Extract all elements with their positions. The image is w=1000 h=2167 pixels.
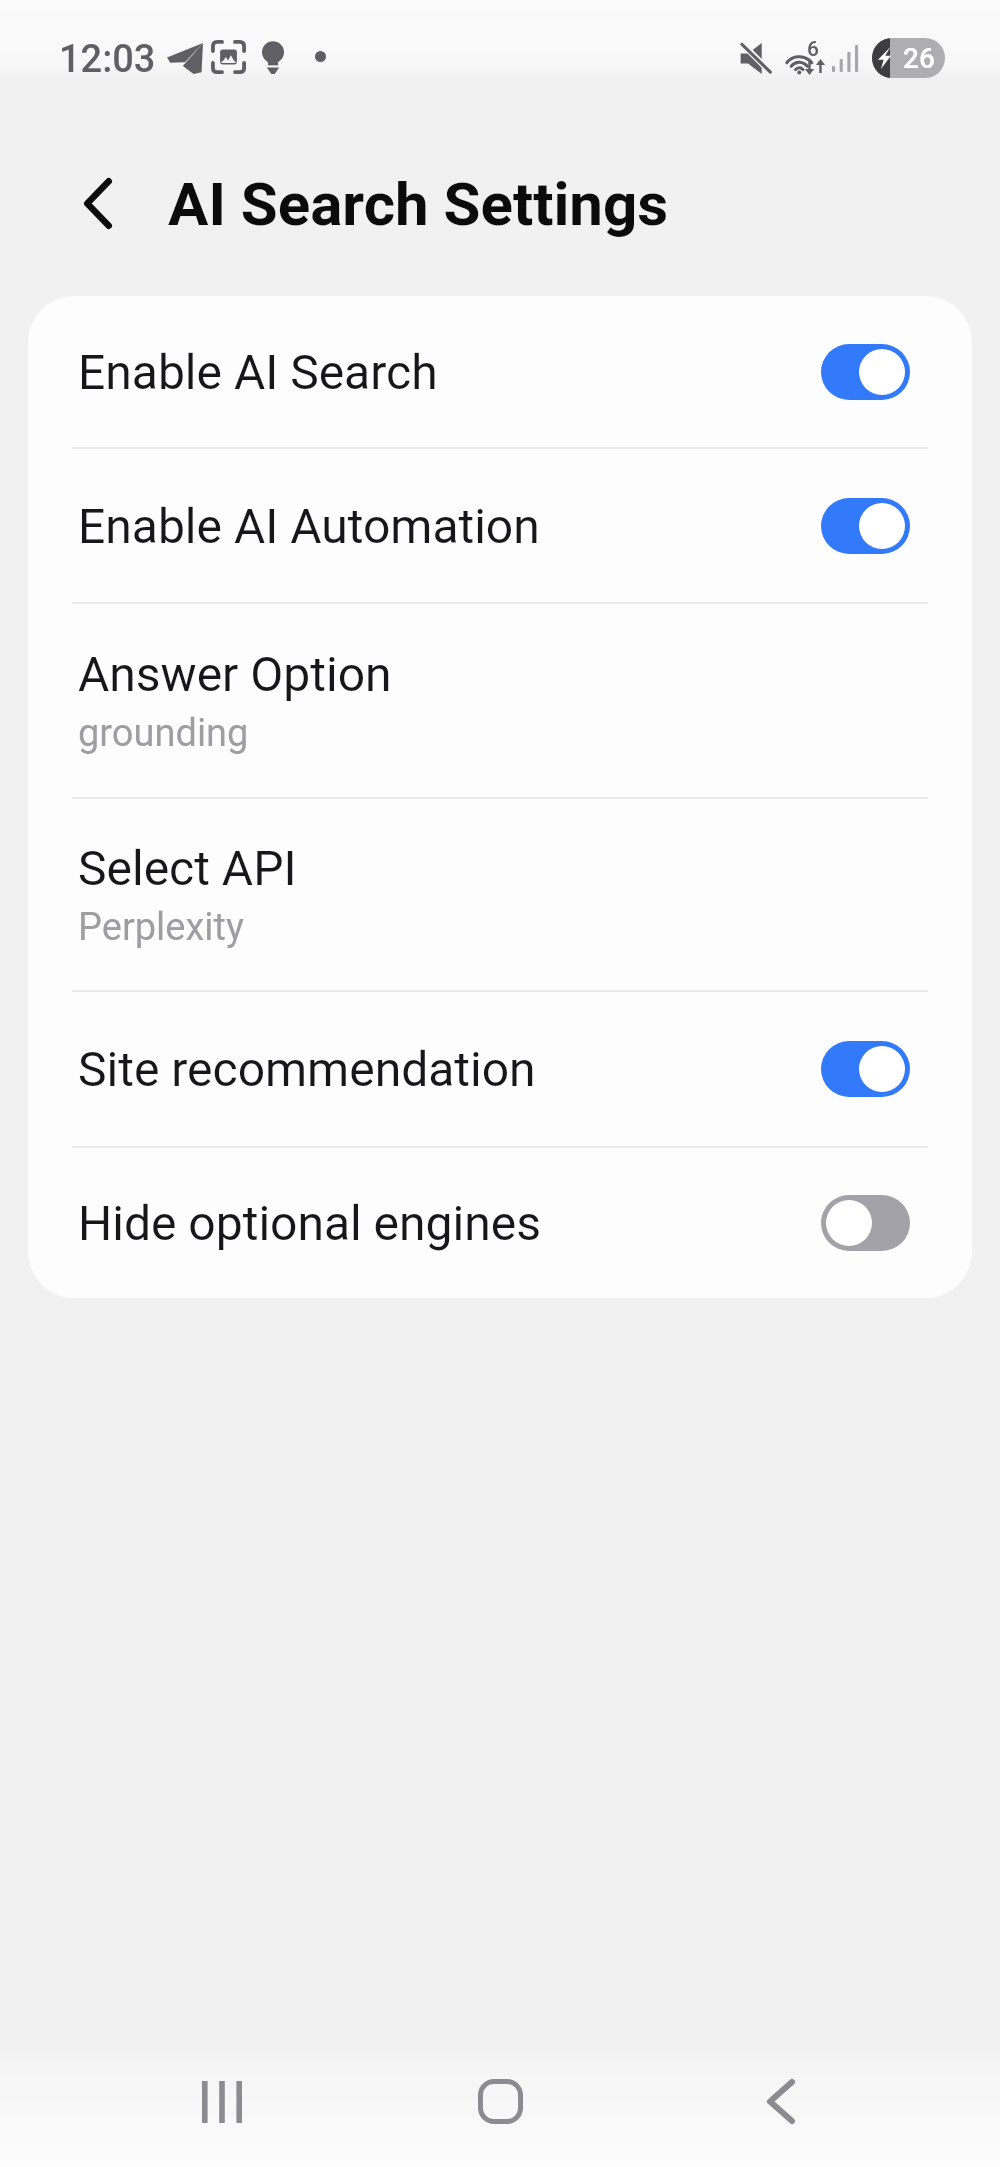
staticText: Enable AI Automation [78,498,821,554]
staticText: AI Search Settings [168,169,669,239]
button[interactable]: Back [57,162,139,244]
button[interactable]: Back [726,2052,836,2167]
button[interactable]: Answer Option [28,604,972,797]
staticText: Site recommendation [78,1041,821,1097]
button[interactable]: Select API [28,799,972,990]
staticText: grounding [78,711,249,756]
staticText: Perplexity [78,905,244,950]
button[interactable]: Home [445,2052,555,2167]
button[interactable]: Hide optional engines [28,1148,972,1298]
button[interactable]: Recent apps [167,2052,277,2167]
staticText: 6 [807,37,819,62]
staticText: 12:03 [59,37,156,82]
button[interactable]: Enable AI Search [28,296,972,447]
staticText: 26 [903,42,935,75]
staticText: Hide optional engines [78,1195,821,1251]
staticText: Answer Option [78,646,392,702]
staticText: Select API [78,840,297,896]
button[interactable]: Enable AI Automation [28,449,972,602]
staticText: Enable AI Search [78,344,821,400]
button[interactable]: Site recommendation [28,992,972,1146]
